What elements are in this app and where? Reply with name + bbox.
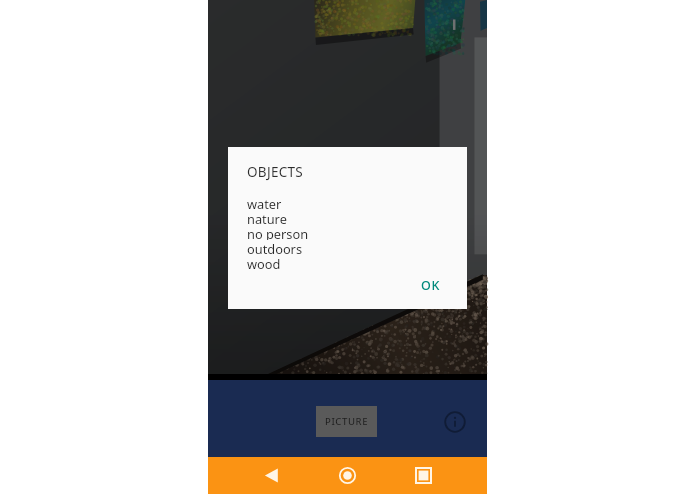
staticText: outdoors: [247, 240, 303, 255]
button[interactable]: Recent apps: [404, 457, 442, 494]
staticText: no person: [247, 225, 309, 240]
staticText: nature: [247, 210, 287, 225]
staticText: OK: [421, 277, 441, 294]
button[interactable]: OK: [411, 272, 451, 299]
staticText: water: [247, 195, 282, 210]
button[interactable]: PICTURE: [316, 406, 377, 437]
button[interactable]: Home: [328, 457, 366, 494]
button[interactable]: Back: [252, 457, 290, 494]
staticText: OBJECTS: [247, 163, 304, 181]
staticText: wood: [247, 255, 281, 270]
staticText: PICTURE: [325, 415, 369, 428]
button[interactable]: Info: [441, 408, 469, 436]
